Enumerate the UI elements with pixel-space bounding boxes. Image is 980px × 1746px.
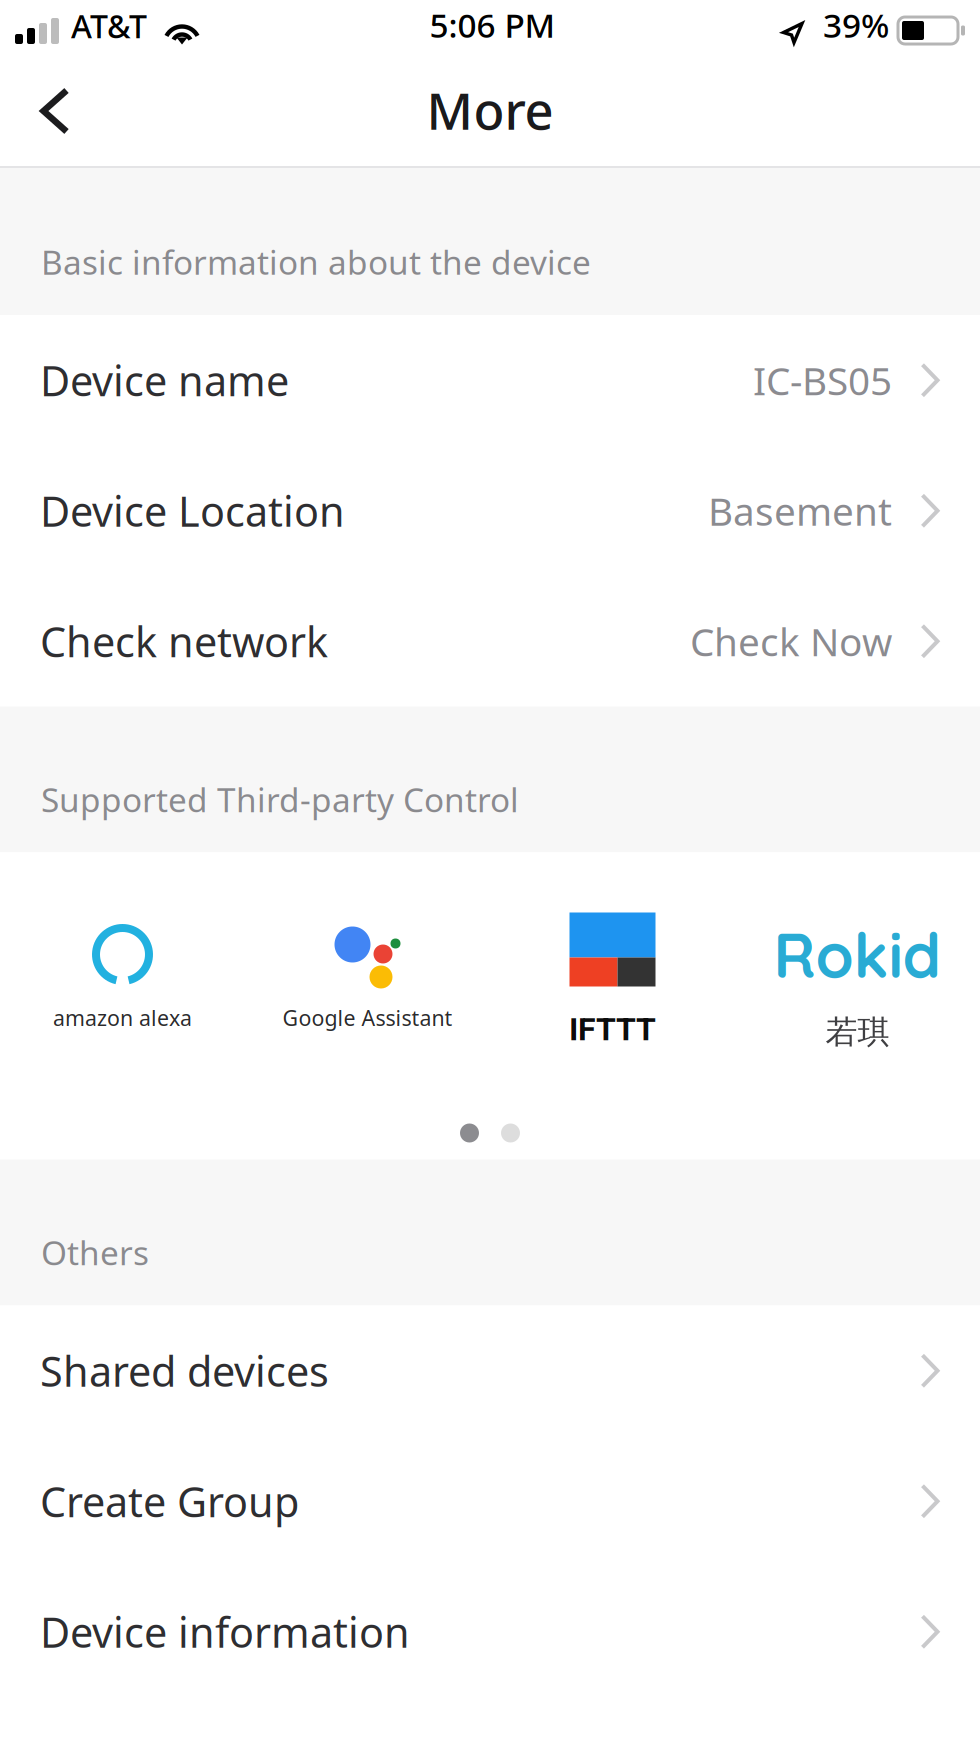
staticText: More [426, 76, 553, 144]
staticText: Device information [40, 1604, 410, 1659]
staticText: Basic information about the device [41, 240, 591, 284]
staticText: amazon alexa [53, 1003, 192, 1032]
staticText: Others [41, 1230, 149, 1274]
button[interactable]: 若琪 [735, 852, 980, 1159]
staticText: Shared devices [40, 1343, 329, 1398]
button[interactable]: Device information [0, 1566, 980, 1697]
button[interactable]: Google Assistant [245, 852, 490, 1159]
staticText: Check network [40, 614, 328, 669]
staticText: 若琪 [825, 1012, 889, 1052]
button[interactable]: Check network [0, 576, 980, 706]
staticText: 5:06 PM [429, 3, 555, 47]
staticText: 39% [823, 3, 889, 47]
button[interactable]: Device Location [0, 445, 980, 576]
button[interactable]: Shared devices [0, 1305, 980, 1436]
button[interactable]: Back [0, 62, 110, 166]
staticText: Rokid [773, 916, 941, 993]
staticText: Supported Third-party Control [41, 777, 519, 821]
staticText: IFTTT [569, 1010, 656, 1048]
staticText: Basement [708, 485, 892, 536]
staticText: Create Group [40, 1474, 299, 1529]
staticText: IC-BS05 [753, 355, 892, 406]
button[interactable]: amazon alexa [0, 852, 245, 1159]
staticText: AT&T [71, 4, 147, 47]
button[interactable]: Create Group [0, 1436, 980, 1566]
button[interactable]: Device name [0, 315, 980, 445]
staticText: Device Location [40, 483, 345, 538]
staticText: Google Assistant [282, 1003, 452, 1032]
button[interactable]: IFTTT [490, 852, 735, 1159]
staticText: Check Now [690, 616, 892, 667]
staticText: Device name [40, 353, 289, 408]
